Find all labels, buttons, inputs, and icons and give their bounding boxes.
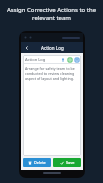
staticText: Assign Corrective Actions to the relevan… xyxy=(5,6,98,22)
staticText: Action Log xyxy=(41,45,64,51)
button[interactable]: Attach xyxy=(74,57,79,62)
staticText: Delete xyxy=(34,160,46,165)
staticText: Save xyxy=(66,160,75,165)
button[interactable]: Save xyxy=(53,158,81,167)
button[interactable]: Voice input xyxy=(60,57,65,62)
staticText: Arrange for safety team to be conducted … xyxy=(25,66,79,81)
button[interactable]: Back xyxy=(21,42,32,53)
staticText: Action Log xyxy=(25,57,46,62)
button[interactable]: Delete xyxy=(23,158,51,167)
button[interactable]: Camera xyxy=(67,57,72,62)
